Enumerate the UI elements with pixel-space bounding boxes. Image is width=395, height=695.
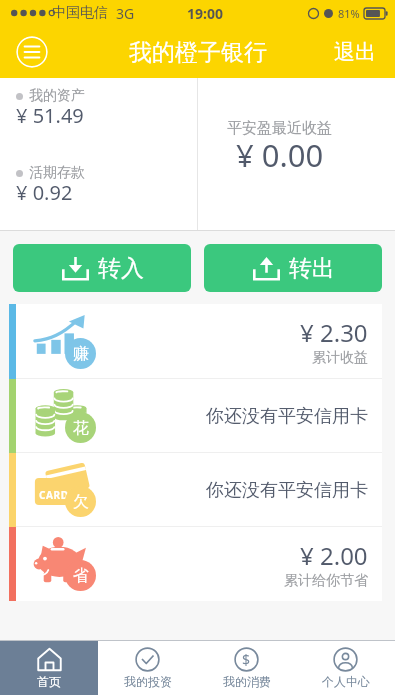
staticText: 你还没有平安信用卡 — [206, 405, 368, 428]
staticText: 中国电信 — [52, 4, 108, 22]
button[interactable]: 省 — [16, 527, 382, 601]
button[interactable]: 个人中心 — [296, 640, 395, 695]
staticText: 我的资产 — [29, 87, 85, 105]
staticText: 平安盈最近收益 — [227, 119, 332, 138]
staticText: 累计收益 — [312, 349, 368, 367]
staticText: 我的橙子银行 — [129, 38, 267, 67]
staticText: 19:00 — [187, 4, 223, 23]
staticText: 活期存款 — [29, 164, 85, 182]
staticText: 首页 — [37, 674, 61, 689]
staticText: 转入 — [98, 254, 144, 283]
staticText: 你还没有平安信用卡 — [206, 479, 368, 502]
staticText: 我的投资 — [124, 674, 172, 689]
staticText: ¥ 2.00 — [300, 539, 368, 572]
staticText: 欠 — [73, 492, 89, 512]
button[interactable]: 赚 — [16, 304, 382, 379]
staticText: 我的消费 — [223, 674, 271, 689]
staticText: 退出 — [334, 39, 376, 65]
staticText: ¥ 0.92 — [16, 179, 73, 206]
staticText: 累计给你节省 — [284, 572, 368, 590]
button[interactable]: $ — [197, 640, 296, 695]
button[interactable]: Menu — [16, 36, 48, 68]
staticText: 3G — [116, 4, 135, 23]
staticText: $ — [242, 650, 251, 669]
staticText: ¥ 2.30 — [300, 316, 368, 349]
button[interactable]: 花 — [16, 379, 382, 453]
staticText: 81% — [338, 6, 360, 21]
staticText: ¥ 51.49 — [16, 102, 84, 129]
staticText: CARD — [39, 488, 69, 502]
button[interactable]: 转出 — [204, 244, 382, 292]
button[interactable]: 退出 — [334, 39, 376, 65]
staticText: ¥ 0.00 — [236, 134, 324, 176]
button[interactable]: 转入 — [13, 244, 191, 292]
staticText: 省 — [73, 566, 89, 586]
staticText: 花 — [73, 418, 89, 438]
staticText: 赚 — [73, 344, 89, 364]
button[interactable]: 首页 — [0, 640, 98, 695]
staticText: 转出 — [289, 254, 335, 283]
staticText: 个人中心 — [322, 674, 370, 689]
button[interactable]: CARD — [16, 453, 382, 527]
button[interactable]: 我的投资 — [98, 640, 197, 695]
